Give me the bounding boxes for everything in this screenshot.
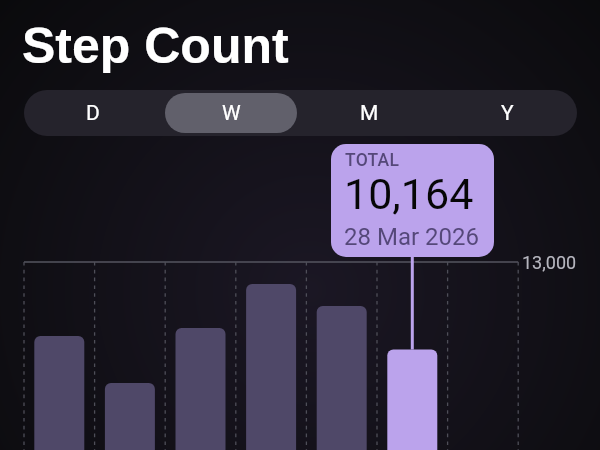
staticText: 13,000: [522, 252, 577, 273]
button[interactable]: M: [303, 93, 435, 133]
staticText: Y: [501, 101, 514, 126]
button[interactable]: W: [165, 93, 297, 133]
staticText: Step Count: [22, 18, 289, 74]
staticText: 10,164: [344, 169, 474, 219]
staticText: D: [86, 101, 100, 126]
staticText: M: [360, 101, 379, 126]
staticText: TOTAL: [345, 150, 400, 171]
button[interactable]: D: [27, 93, 159, 133]
button[interactable]: TOTAL: [331, 144, 494, 257]
staticText: W: [222, 101, 241, 126]
button[interactable]: Y: [441, 93, 573, 133]
staticText: 28 Mar 2026: [344, 223, 479, 251]
